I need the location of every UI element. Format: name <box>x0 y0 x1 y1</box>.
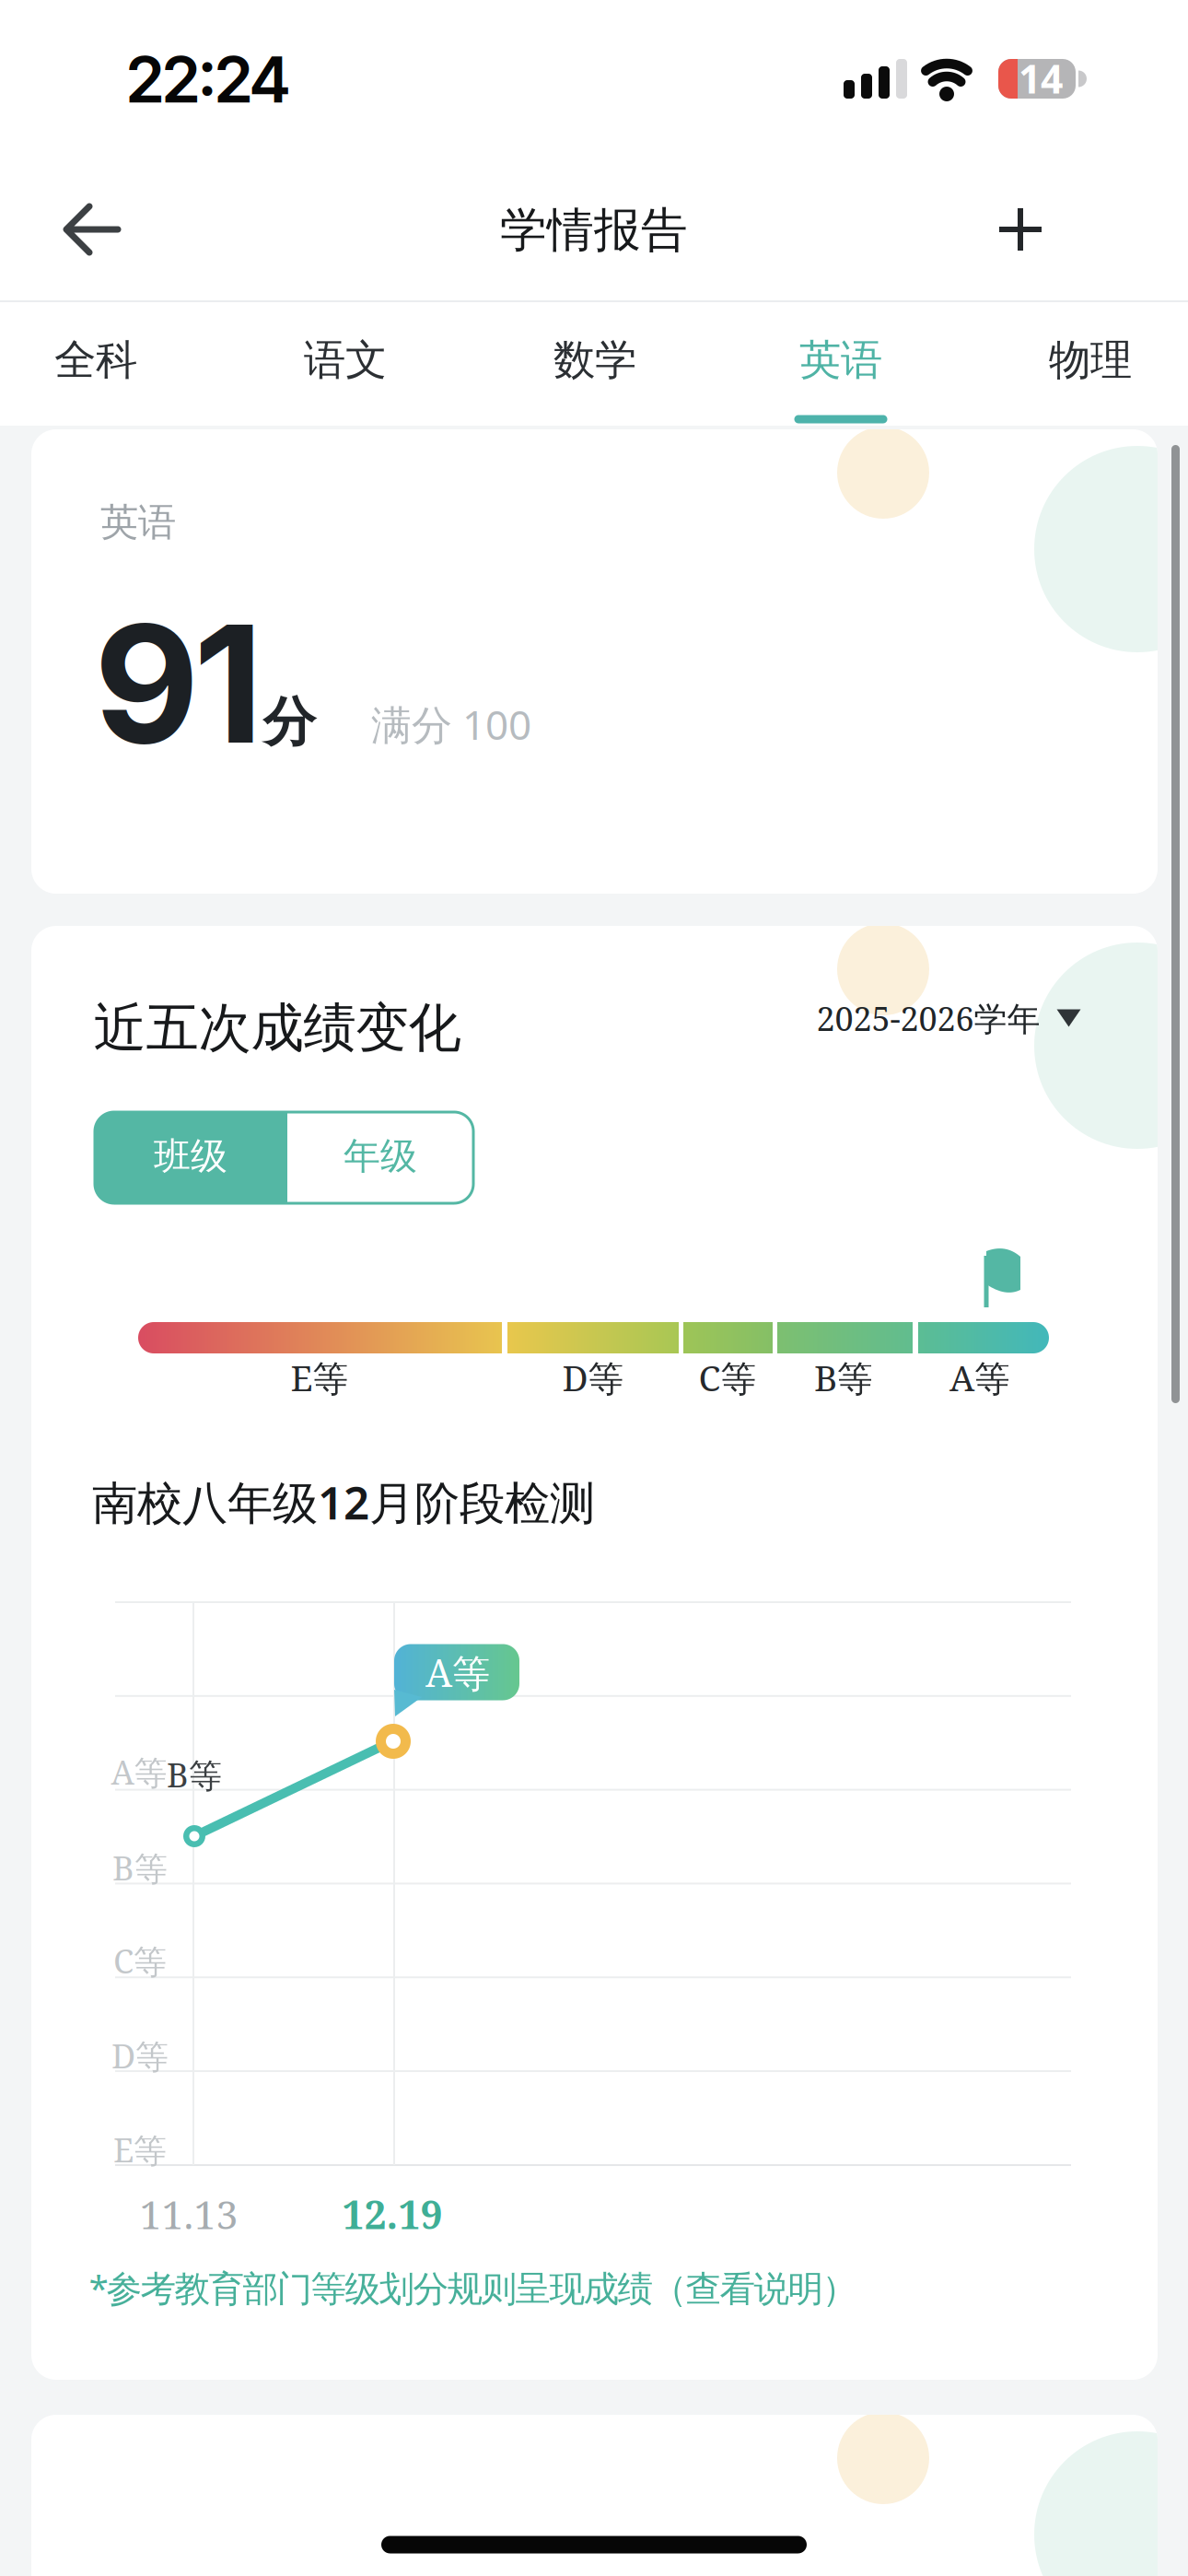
staticText: 数学 <box>553 335 636 386</box>
button[interactable]: Back <box>0 0 1188 2576</box>
staticText: 近五次成绩变化 <box>93 996 461 1061</box>
staticText: 2025-2026学年 <box>816 995 1040 1041</box>
staticText: 满分 100 <box>371 697 531 751</box>
staticText: 南校八年级12月阶段检测 <box>92 1472 595 1532</box>
staticText: E等 <box>291 1353 349 1402</box>
staticText: B等 <box>167 1752 222 1797</box>
staticText: 12.19 <box>342 2187 443 2241</box>
staticText: 分 <box>263 690 315 755</box>
staticText: D等 <box>562 1353 624 1402</box>
staticText: A等 <box>111 1749 167 1794</box>
staticText: C等 <box>699 1353 757 1402</box>
button[interactable]: 数学 <box>553 335 636 386</box>
staticText: A等 <box>425 1646 490 1698</box>
button[interactable]: 物理 <box>1049 335 1132 386</box>
staticText: A等 <box>949 1353 1010 1402</box>
staticText: 91 <box>94 585 263 782</box>
button[interactable]: 语文 <box>304 335 387 386</box>
button[interactable]: 全科 <box>54 335 137 386</box>
staticText: 22:24 <box>125 41 291 118</box>
staticText: 英语 <box>100 499 176 546</box>
staticText: D等 <box>111 2033 169 2078</box>
staticText: 语文 <box>304 335 387 386</box>
staticText: 学情报告 <box>500 202 688 259</box>
staticText: 英语 <box>799 335 882 386</box>
button[interactable]: 年级 <box>344 1134 417 1179</box>
staticText: 班级 <box>154 1134 227 1179</box>
staticText: B等 <box>814 1353 873 1402</box>
staticText: 年级 <box>344 1134 417 1179</box>
button[interactable]: *参考教育部门等级划分规则呈现成绩（查看说明） <box>89 2264 858 2311</box>
button[interactable]: 英语 <box>799 335 882 386</box>
staticText: C等 <box>113 1938 167 1983</box>
staticText: 11.13 <box>140 2187 238 2241</box>
staticText: 物理 <box>1049 335 1132 386</box>
staticText: 全科 <box>54 335 137 386</box>
button[interactable] <box>95 1112 287 1203</box>
staticText: *参考教育部门等级划分规则呈现成绩（查看说明） <box>89 2264 858 2311</box>
button[interactable]: Add <box>0 0 1188 2576</box>
staticText: E等 <box>113 2127 167 2172</box>
staticText: B等 <box>112 1845 168 1890</box>
staticText: 14 <box>1019 52 1063 104</box>
button[interactable]: 2025-2026学年 <box>816 995 1081 1041</box>
